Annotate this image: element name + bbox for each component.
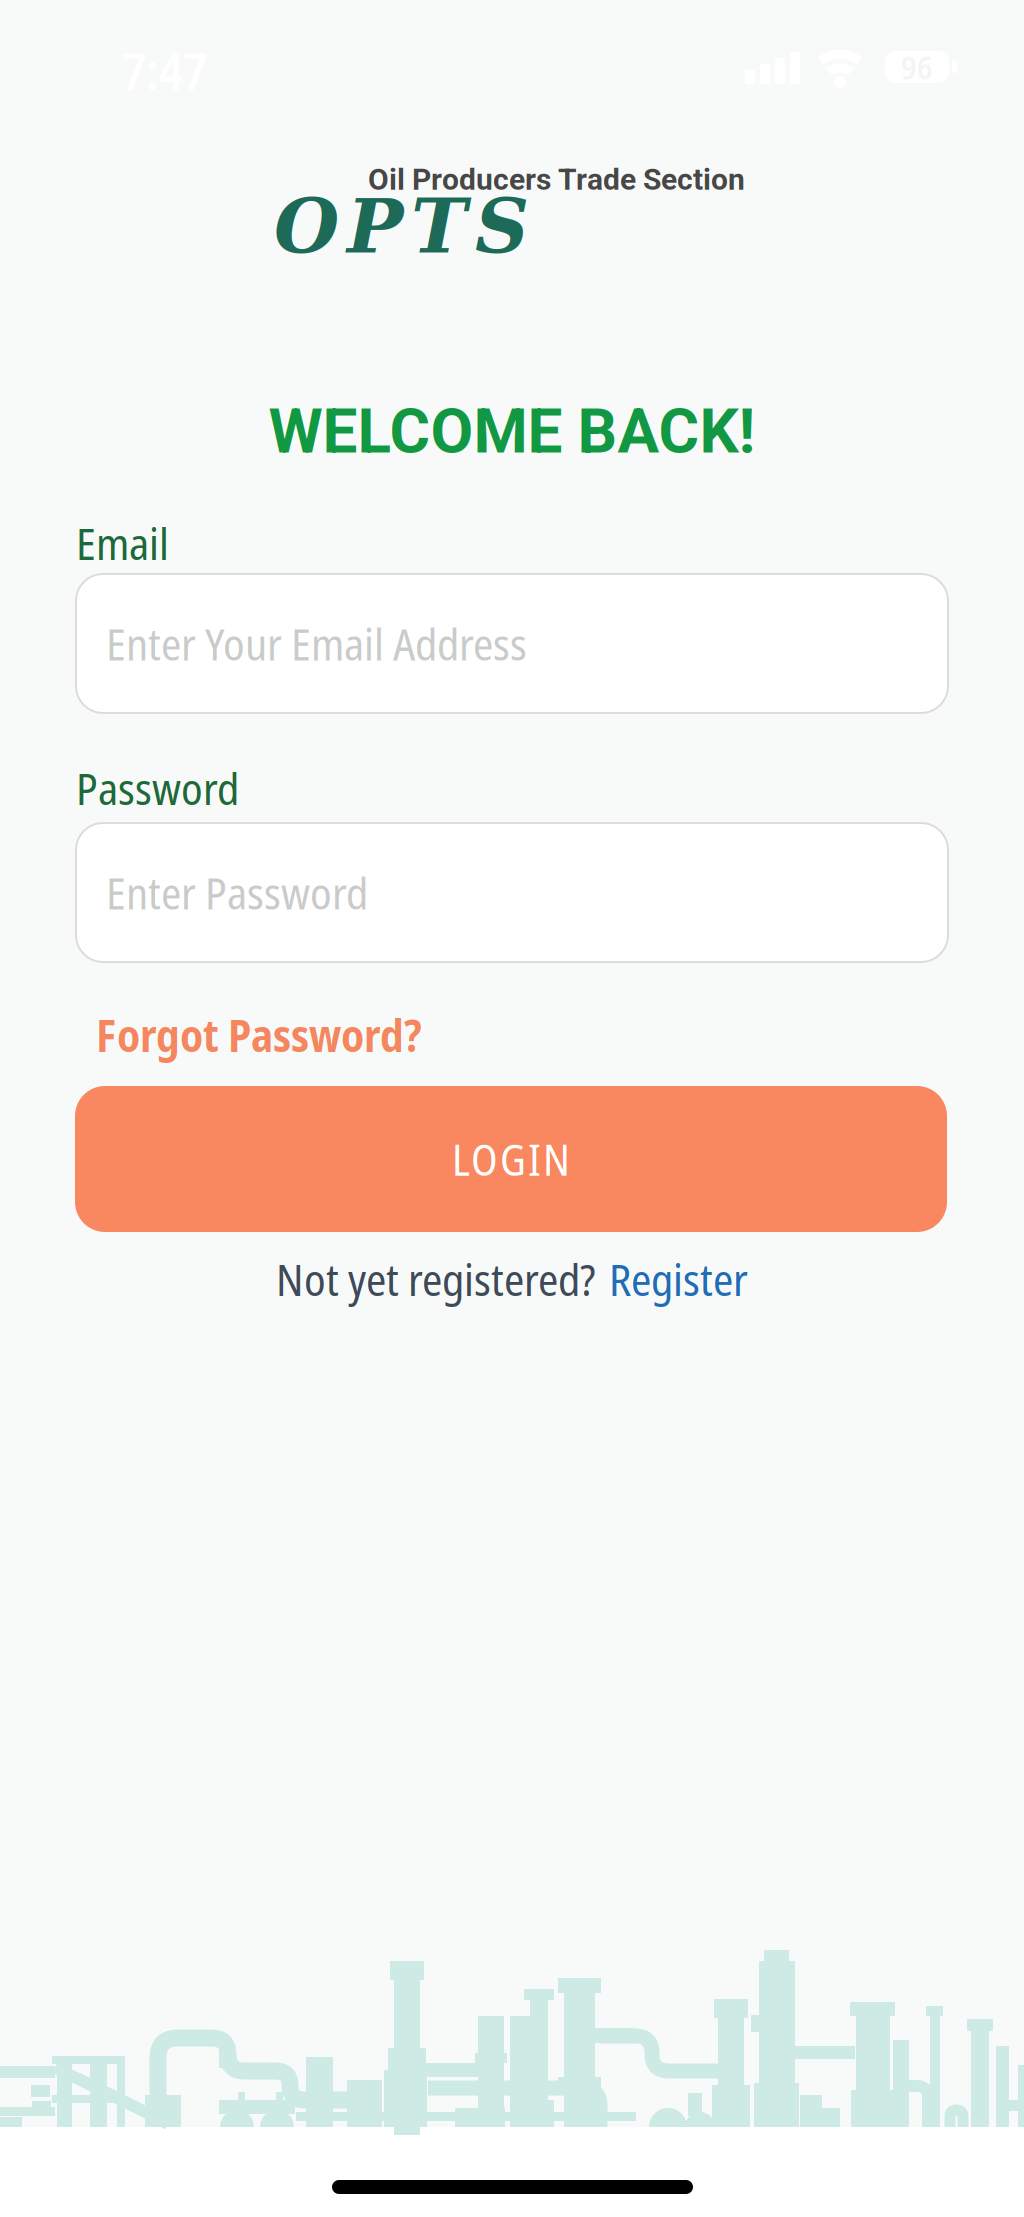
staticText: Register bbox=[609, 1249, 748, 1309]
staticText: Enter Password bbox=[106, 862, 368, 922]
button[interactable]: Enter Password bbox=[76, 823, 948, 962]
staticText: LOGIN bbox=[452, 1130, 570, 1188]
button[interactable]: Register bbox=[609, 1249, 748, 1309]
staticText: Not yet registered? bbox=[276, 1249, 596, 1309]
button[interactable]: Forgot Password? bbox=[96, 1005, 422, 1065]
staticText: Password bbox=[76, 758, 239, 818]
button[interactable]: LOGIN bbox=[75, 1086, 947, 1232]
staticText: OPTS bbox=[274, 182, 529, 270]
button[interactable]: Enter Your Email Address bbox=[76, 574, 948, 713]
staticText: WELCOME BACK! bbox=[268, 395, 755, 468]
staticText: Enter Your Email Address bbox=[106, 613, 527, 673]
staticText: Email bbox=[76, 513, 169, 573]
staticText: 96 bbox=[901, 45, 933, 89]
staticText: Forgot Password? bbox=[96, 1005, 422, 1065]
staticText: Oil Producers Trade Section bbox=[368, 162, 745, 197]
